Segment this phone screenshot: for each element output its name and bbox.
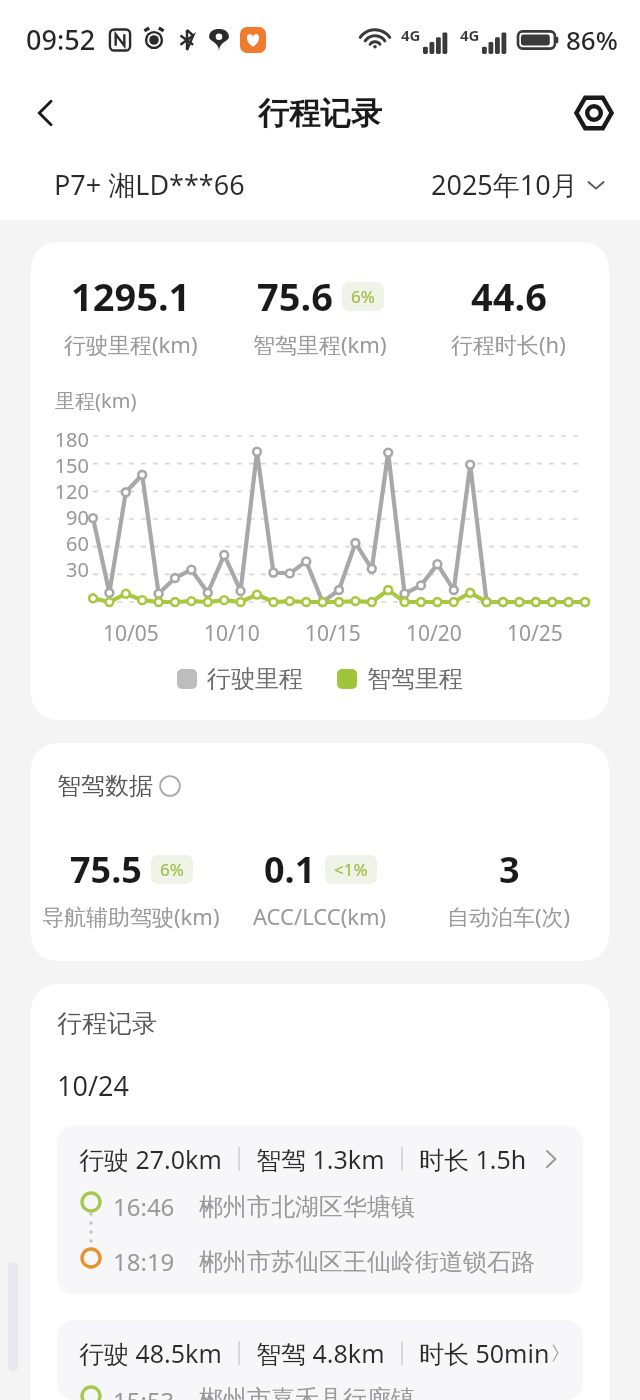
staticText: 10/05 bbox=[103, 619, 159, 648]
staticText: 行驶里程(km) bbox=[64, 329, 198, 359]
staticText: 10/20 bbox=[406, 619, 462, 648]
staticText: 150 bbox=[54, 452, 89, 478]
staticText: 时长 50min bbox=[419, 1336, 550, 1370]
staticText: 09:52 bbox=[26, 21, 96, 58]
staticText: 2025年10月 bbox=[431, 166, 578, 203]
staticText: 4G bbox=[460, 25, 480, 45]
staticText: <1% bbox=[334, 858, 368, 881]
staticText: 行程记录 bbox=[258, 94, 382, 133]
staticText: 导航辅助驾驶(km) bbox=[42, 901, 220, 931]
staticText: 60 bbox=[66, 530, 89, 556]
staticText: 郴州市北湖区华塘镇 bbox=[199, 1192, 415, 1222]
staticText: 4G bbox=[401, 25, 421, 45]
staticText: 郴州市嘉禾县行廊镇 bbox=[199, 1384, 415, 1400]
staticText: 郴州市苏仙区王仙岭街道锁石路 bbox=[199, 1247, 535, 1277]
staticText: 3 bbox=[499, 845, 520, 894]
staticText: 6% bbox=[160, 858, 184, 881]
staticText: 44.6 bbox=[471, 270, 547, 322]
staticText: 180 bbox=[54, 426, 89, 452]
button[interactable]: 2025年10月 bbox=[431, 166, 606, 203]
staticText: 0.1 bbox=[264, 845, 316, 894]
staticText: 智驾 4.8km bbox=[256, 1336, 385, 1370]
staticText: 自动泊车(次) bbox=[447, 901, 571, 931]
staticText: 90 bbox=[66, 504, 89, 530]
staticText: 10/25 bbox=[507, 619, 563, 648]
staticText: 10/15 bbox=[305, 619, 361, 648]
staticText: 行驶里程 bbox=[207, 664, 303, 694]
staticText: 行驶 48.5km bbox=[79, 1336, 222, 1370]
button[interactable]: 行驶 27.0km bbox=[57, 1126, 583, 1294]
staticText: P7+ 湘LD***66 bbox=[54, 166, 245, 203]
button[interactable]: Back bbox=[18, 85, 74, 141]
staticText: 86% bbox=[566, 22, 618, 57]
staticText: 智驾里程 bbox=[367, 664, 463, 694]
staticText: 行程记录 bbox=[57, 1008, 157, 1039]
staticText: 智驾里程(km) bbox=[253, 329, 387, 359]
staticText: 120 bbox=[54, 478, 89, 504]
staticText: 10/24 bbox=[57, 1067, 129, 1104]
staticText: 75.6 bbox=[257, 270, 333, 322]
staticText: 行程时长(h) bbox=[451, 329, 566, 359]
staticText: 6% bbox=[351, 285, 375, 308]
staticText: 时长 1.5h bbox=[419, 1142, 527, 1176]
button[interactable]: 智驾数据 bbox=[57, 771, 181, 801]
staticText: 75.5 bbox=[70, 845, 142, 894]
staticText: 15:53 bbox=[113, 1384, 175, 1400]
staticText: 智驾数据 bbox=[57, 771, 153, 801]
staticText: ACC/LCC(km) bbox=[253, 901, 387, 931]
button[interactable]: Settings bbox=[566, 85, 622, 141]
staticText: 1295.1 bbox=[71, 270, 191, 322]
staticText: 16:46 bbox=[113, 1190, 175, 1223]
staticText: 智驾 1.3km bbox=[256, 1142, 385, 1176]
staticText: 30 bbox=[66, 556, 89, 582]
staticText: 行驶 27.0km bbox=[79, 1142, 222, 1176]
button[interactable]: 行驶 48.5km bbox=[57, 1320, 583, 1400]
staticText: 里程(km) bbox=[55, 387, 137, 414]
staticText: 18:19 bbox=[113, 1245, 175, 1278]
staticText: 10/10 bbox=[204, 619, 260, 648]
